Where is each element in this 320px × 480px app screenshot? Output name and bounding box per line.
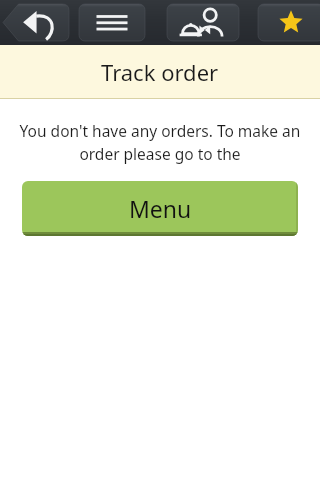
button[interactable]: Back: [3, 4, 69, 41]
button[interactable]: Waiter service: [167, 4, 239, 41]
button[interactable]: Favourites: [258, 4, 320, 41]
staticText: Menu: [129, 193, 192, 224]
button[interactable]: Menu: [22, 181, 298, 236]
button[interactable]: Menu: [79, 4, 145, 41]
staticText: You don't have any orders. To make an or…: [6, 120, 314, 165]
staticText: Track order: [101, 57, 219, 87]
